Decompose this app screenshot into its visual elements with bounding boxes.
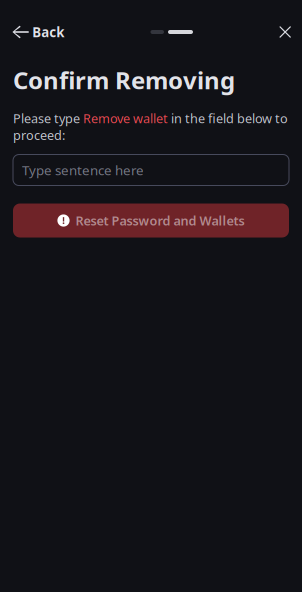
staticText: Confirm Removing bbox=[13, 64, 235, 96]
staticText: Back bbox=[32, 23, 64, 41]
staticText: Please type Remove wallet in the field b… bbox=[13, 110, 288, 143]
staticText: Type sentence here bbox=[22, 161, 144, 179]
button[interactable]: Close bbox=[267, 0, 302, 64]
staticText: Reset Password and Wallets bbox=[76, 212, 245, 229]
button[interactable]: Reset Password and Wallets bbox=[0, 185, 302, 237]
button[interactable]: Back bbox=[0, 0, 74, 64]
button[interactable]: Type sentence here bbox=[0, 143, 302, 185]
